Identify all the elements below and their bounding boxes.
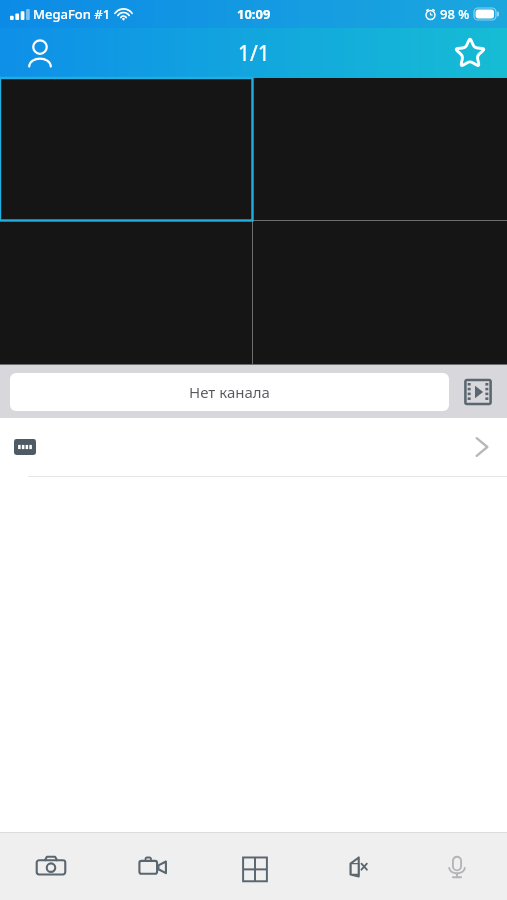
button[interactable]: Layout [204, 833, 305, 900]
staticText: MegaFon #1 [33, 5, 111, 23]
button[interactable]: Snapshot [0, 833, 102, 900]
button[interactable]: Channel 3 [0, 221, 252, 364]
button[interactable]: Record [102, 833, 204, 900]
button[interactable]: Account [18, 31, 62, 75]
staticText: 98 % [440, 5, 470, 23]
staticText: 1/1 [238, 39, 270, 68]
button[interactable]: Channel 1 [0, 78, 252, 220]
button[interactable]: Нет канала [10, 373, 449, 411]
button[interactable]: Channel 2 [253, 78, 507, 220]
button[interactable]: Playback [459, 373, 497, 411]
button[interactable]: Mute [305, 833, 406, 900]
staticText: Нет канала [189, 382, 270, 402]
button[interactable]: Favorites [447, 30, 493, 76]
button[interactable]: Talk [406, 833, 507, 900]
button[interactable] [0, 418, 507, 476]
staticText: 10:09 [237, 5, 271, 23]
